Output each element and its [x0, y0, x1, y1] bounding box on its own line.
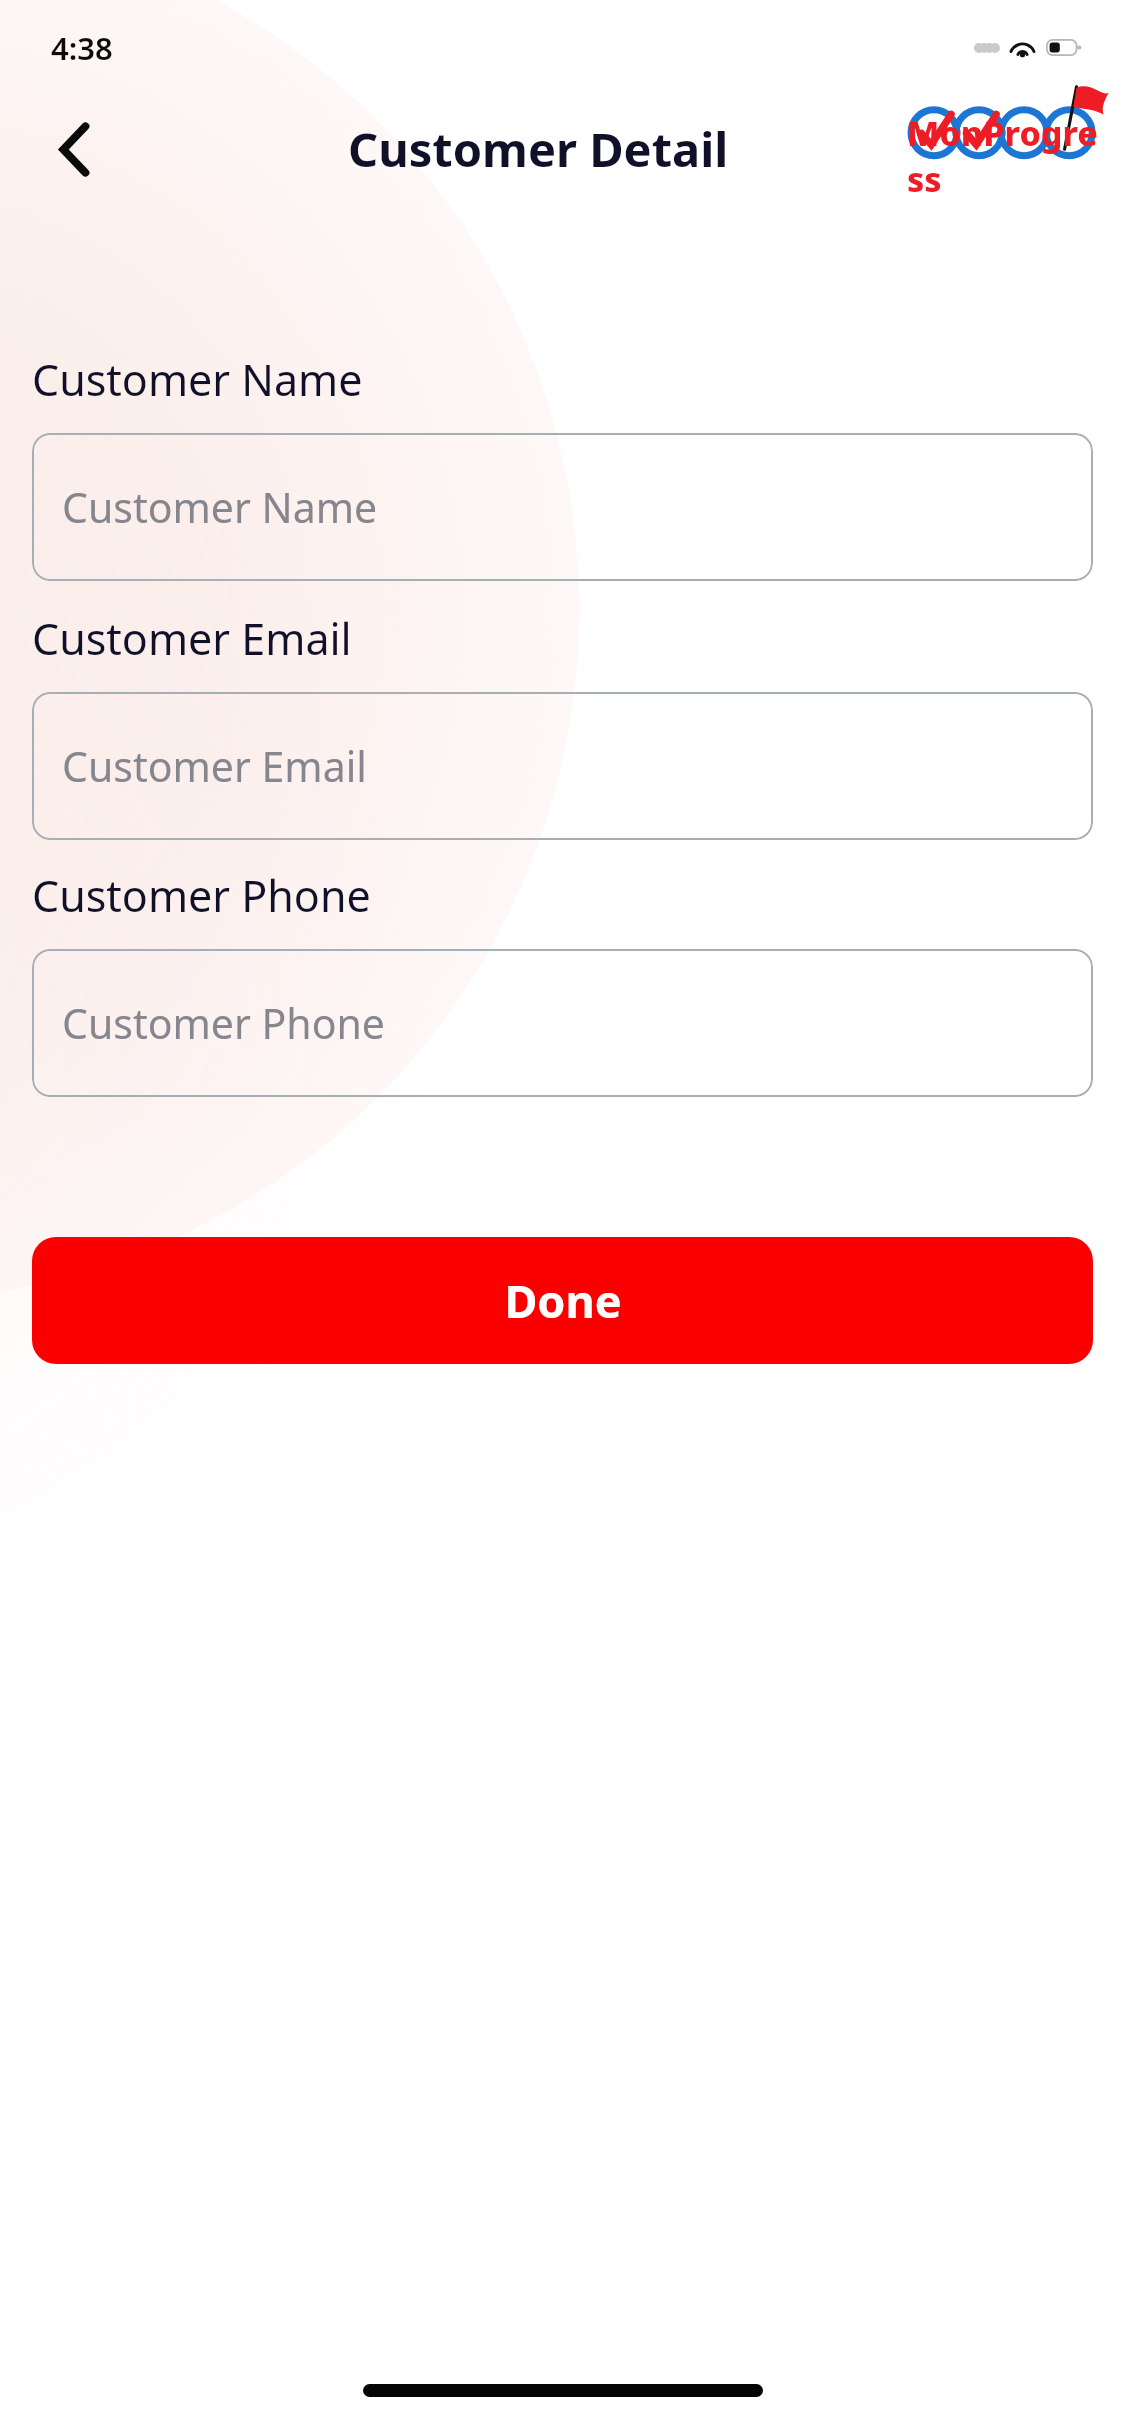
staticText: Customer Name	[32, 350, 363, 409]
staticText: Customer Name	[62, 479, 378, 535]
button[interactable]: Done	[32, 1237, 1093, 1364]
staticText: Done	[504, 1270, 622, 1331]
button[interactable]: Customer Phone	[32, 949, 1093, 1097]
staticText: 4:38	[51, 27, 113, 69]
staticText: Customer Email	[32, 609, 352, 668]
staticText: Customer Email	[62, 738, 367, 794]
button[interactable]: Back	[20, 95, 128, 203]
staticText: Customer Phone	[62, 995, 385, 1051]
staticText: Customer Detail	[348, 117, 729, 181]
button[interactable]: MonProgress logo	[907, 93, 1105, 205]
button[interactable]: Customer Email	[32, 692, 1093, 840]
staticText: MonProgress	[907, 110, 1105, 202]
staticText: Customer Phone	[32, 866, 371, 925]
button[interactable]: Customer Name	[32, 433, 1093, 581]
